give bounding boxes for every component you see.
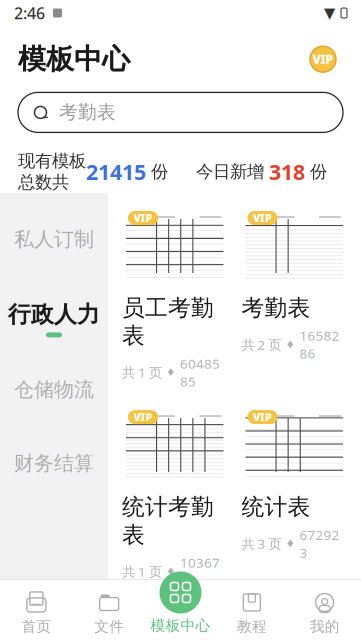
button[interactable]: 仓储物流	[0, 357, 108, 431]
staticText: 私人订制	[14, 227, 94, 252]
staticText: 现有模板总数共	[18, 150, 86, 193]
staticText: 统计考勤表	[122, 493, 214, 549]
staticText: 21415	[86, 157, 146, 186]
staticText: 首页	[21, 617, 51, 635]
staticText: 318	[269, 157, 305, 186]
button[interactable]: VIP	[241, 406, 347, 561]
staticText: ♦	[285, 538, 295, 550]
staticText: 1658286	[299, 327, 339, 362]
staticText: 教程	[237, 617, 267, 635]
button[interactable]: VIP	[241, 605, 347, 641]
staticText: VIP	[133, 211, 152, 225]
staticText: 仓储物流	[14, 377, 94, 402]
button[interactable]: 财务结算	[0, 431, 108, 504]
staticText: 1036768	[180, 554, 220, 589]
button[interactable]: 模板中心	[145, 571, 215, 634]
staticText: 共 3 页	[241, 535, 281, 552]
button[interactable]: 私人订制	[0, 207, 108, 281]
button[interactable]: VIP	[122, 207, 227, 390]
staticText: 员工考勤表	[122, 294, 214, 350]
staticText: ♦	[285, 338, 295, 351]
staticText: 份	[146, 161, 168, 182]
staticText: VIP	[133, 609, 152, 623]
staticText: ♦	[166, 366, 176, 378]
staticText: 考勤表	[241, 294, 310, 322]
staticText: 文件	[94, 617, 124, 635]
staticText: VIP	[253, 410, 272, 424]
button[interactable]: VIP	[122, 605, 227, 641]
staticText: ▼	[324, 5, 335, 21]
button[interactable]: 教程	[215, 592, 288, 635]
button[interactable]: 文件	[73, 592, 146, 635]
staticText: VIP	[133, 410, 152, 424]
staticText: 6048585	[180, 355, 220, 390]
staticText: VIP	[253, 609, 272, 623]
staticText: 共 2 页	[241, 336, 281, 353]
button[interactable]: 首页	[0, 592, 73, 635]
staticText: 模板中心	[150, 616, 210, 634]
staticText: 份	[305, 161, 327, 182]
staticText: 我的	[310, 617, 340, 635]
button[interactable]: 考勤表	[18, 92, 343, 132]
staticText: 2:46	[14, 2, 45, 24]
button[interactable]: VIP	[122, 406, 227, 589]
staticText: 统计表	[241, 493, 310, 521]
staticText: 672923	[299, 526, 339, 561]
staticText: 财务结算	[14, 451, 94, 475]
button[interactable]: VIP	[241, 207, 347, 362]
staticText: 共 1 页	[122, 363, 162, 381]
staticText: ♦	[166, 565, 176, 577]
staticText: 今日新增	[196, 161, 269, 182]
staticText: 共 1 页	[122, 563, 162, 580]
staticText: VIP	[312, 51, 333, 67]
staticText: 行政人力	[8, 300, 100, 328]
staticText: 考勤表	[59, 101, 116, 124]
button[interactable]: 我的	[288, 592, 361, 635]
button[interactable]: VIP 会员	[303, 42, 343, 76]
button[interactable]: 行政人力	[0, 280, 108, 357]
staticText: 模板中心	[18, 42, 130, 76]
staticText: VIP	[253, 211, 272, 225]
